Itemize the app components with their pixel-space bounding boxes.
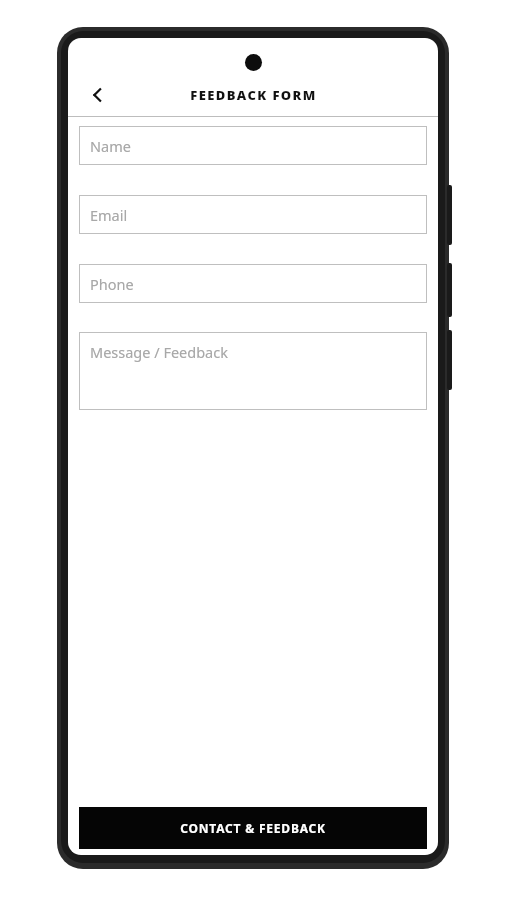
staticText: FEEDBACK FORM [190,86,317,104]
button[interactable]: Name [79,126,427,165]
staticText: Message / Feedback [90,342,228,362]
staticText: Name [90,136,131,156]
staticText: Phone [90,274,134,294]
button[interactable]: CONTACT & FEEDBACK [79,807,427,849]
button[interactable]: Email [79,195,427,234]
button[interactable]: Message / Feedback [79,332,427,410]
staticText: CONTACT & FEEDBACK [180,820,326,836]
button[interactable]: Back [76,73,120,116]
button[interactable]: Phone [79,264,427,303]
staticText: Email [90,205,128,225]
